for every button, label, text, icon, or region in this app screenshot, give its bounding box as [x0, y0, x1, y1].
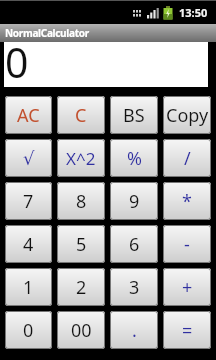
button[interactable]: . [110, 311, 158, 349]
button[interactable]: Copy [163, 96, 211, 134]
button[interactable]: 00 [57, 311, 105, 349]
staticText: 6 [129, 232, 140, 257]
button[interactable]: 6 [110, 225, 158, 263]
staticText: 2 [76, 275, 87, 300]
button[interactable]: AC [5, 96, 52, 134]
staticText: BS [123, 103, 145, 128]
staticText: 5 [76, 232, 87, 257]
button[interactable]: 8 [57, 182, 105, 220]
button[interactable]: 9 [110, 182, 158, 220]
button[interactable]: % [110, 139, 158, 177]
staticText: √ [23, 148, 35, 169]
button[interactable]: BS [110, 96, 158, 134]
button[interactable]: 0 [5, 311, 52, 349]
button[interactable]: 1 [5, 268, 52, 306]
staticText: 0 [5, 34, 29, 79]
staticText: 00 [71, 318, 92, 343]
staticText: NormalCalculator [5, 26, 89, 40]
staticText: 0 [23, 318, 34, 343]
button[interactable]: + [163, 268, 211, 306]
button[interactable]: 4 [5, 225, 52, 263]
staticText: . [132, 318, 137, 343]
staticText: C [75, 103, 87, 128]
staticText: + [182, 275, 193, 300]
staticText: 3 [129, 275, 140, 300]
staticText: 9 [129, 189, 140, 214]
staticText: * [182, 189, 192, 214]
button[interactable]: X^2 [57, 139, 105, 177]
button[interactable]: * [163, 182, 211, 220]
staticText: / [184, 146, 191, 171]
staticText: Copy [166, 103, 209, 128]
button[interactable]: 7 [5, 182, 52, 220]
button[interactable]: √ [5, 139, 52, 177]
button[interactable]: 5 [57, 225, 105, 263]
staticText: AC [17, 103, 40, 128]
staticText: 13:50 [179, 5, 208, 20]
button[interactable]: 2 [57, 268, 105, 306]
button[interactable]: = [163, 311, 211, 349]
staticText: 8 [76, 189, 87, 214]
staticText: 7 [23, 189, 34, 214]
button[interactable]: - [163, 225, 211, 263]
staticText: = [182, 318, 193, 343]
button[interactable]: 3 [110, 268, 158, 306]
staticText: 4 [23, 232, 34, 257]
staticText: % [127, 146, 142, 171]
staticText: - [184, 232, 190, 257]
staticText: X^2 [66, 147, 96, 170]
button[interactable]: / [163, 139, 211, 177]
button[interactable]: C [57, 96, 105, 134]
staticText: 1 [23, 275, 34, 300]
